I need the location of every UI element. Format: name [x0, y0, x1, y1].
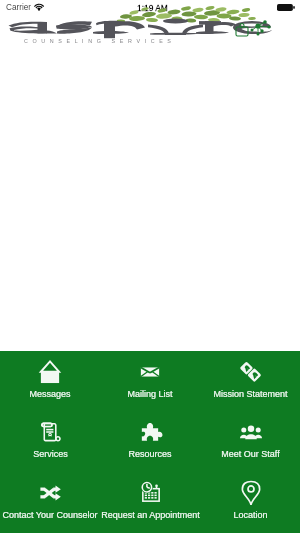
button[interactable]: Mission Statement — [200, 351, 300, 411]
staticText: Resources — [128, 449, 172, 459]
staticText: Messages — [29, 389, 71, 399]
staticText: Mission Statement — [213, 389, 288, 399]
staticText: Contact Your Counselor — [2, 510, 98, 520]
staticText: Carrier — [6, 3, 32, 12]
button[interactable]: Mailing List — [100, 351, 200, 411]
button[interactable]: Services — [0, 411, 100, 472]
staticText: Request an Appointment — [101, 510, 200, 520]
button[interactable]: Messages — [0, 351, 100, 411]
staticText: Location — [233, 510, 268, 520]
button[interactable]: Contact Your Counselor — [0, 472, 100, 533]
staticText: Meet Our Staff — [221, 449, 280, 459]
button[interactable]: Request an Appointment — [100, 472, 200, 533]
staticText: 1:19 AM — [137, 3, 168, 12]
staticText: C O U N S E L I N G S E R V I C E S — [24, 38, 173, 44]
button[interactable]: Resources — [100, 411, 200, 472]
staticText: Services — [33, 449, 68, 459]
button[interactable]: Meet Our Staff — [200, 411, 300, 472]
staticText: Mailing List — [127, 389, 173, 399]
button[interactable]: Location — [200, 472, 300, 533]
